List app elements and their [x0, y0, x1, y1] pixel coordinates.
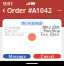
staticText: Order #A1042	[7, 6, 52, 15]
staticText: 9:41	[3, 0, 13, 7]
staticText: Est. arrival	[4, 31, 23, 37]
staticText: IN TRANSIT	[21, 20, 42, 26]
button[interactable]: Cancel	[33, 54, 61, 58]
button[interactable]: Message	[3, 54, 31, 58]
staticText: 8812 3391	[42, 25, 59, 30]
staticText: Cancel	[41, 54, 54, 59]
staticText: Tue, 4 Jun	[40, 31, 59, 37]
staticText: FastShip	[43, 28, 59, 33]
staticText: Carrier	[4, 28, 18, 33]
button[interactable]: Back	[2, 7, 6, 13]
staticText: Tracking	[4, 25, 19, 30]
button[interactable]: More options	[57, 7, 62, 13]
staticText: Message	[8, 54, 25, 59]
